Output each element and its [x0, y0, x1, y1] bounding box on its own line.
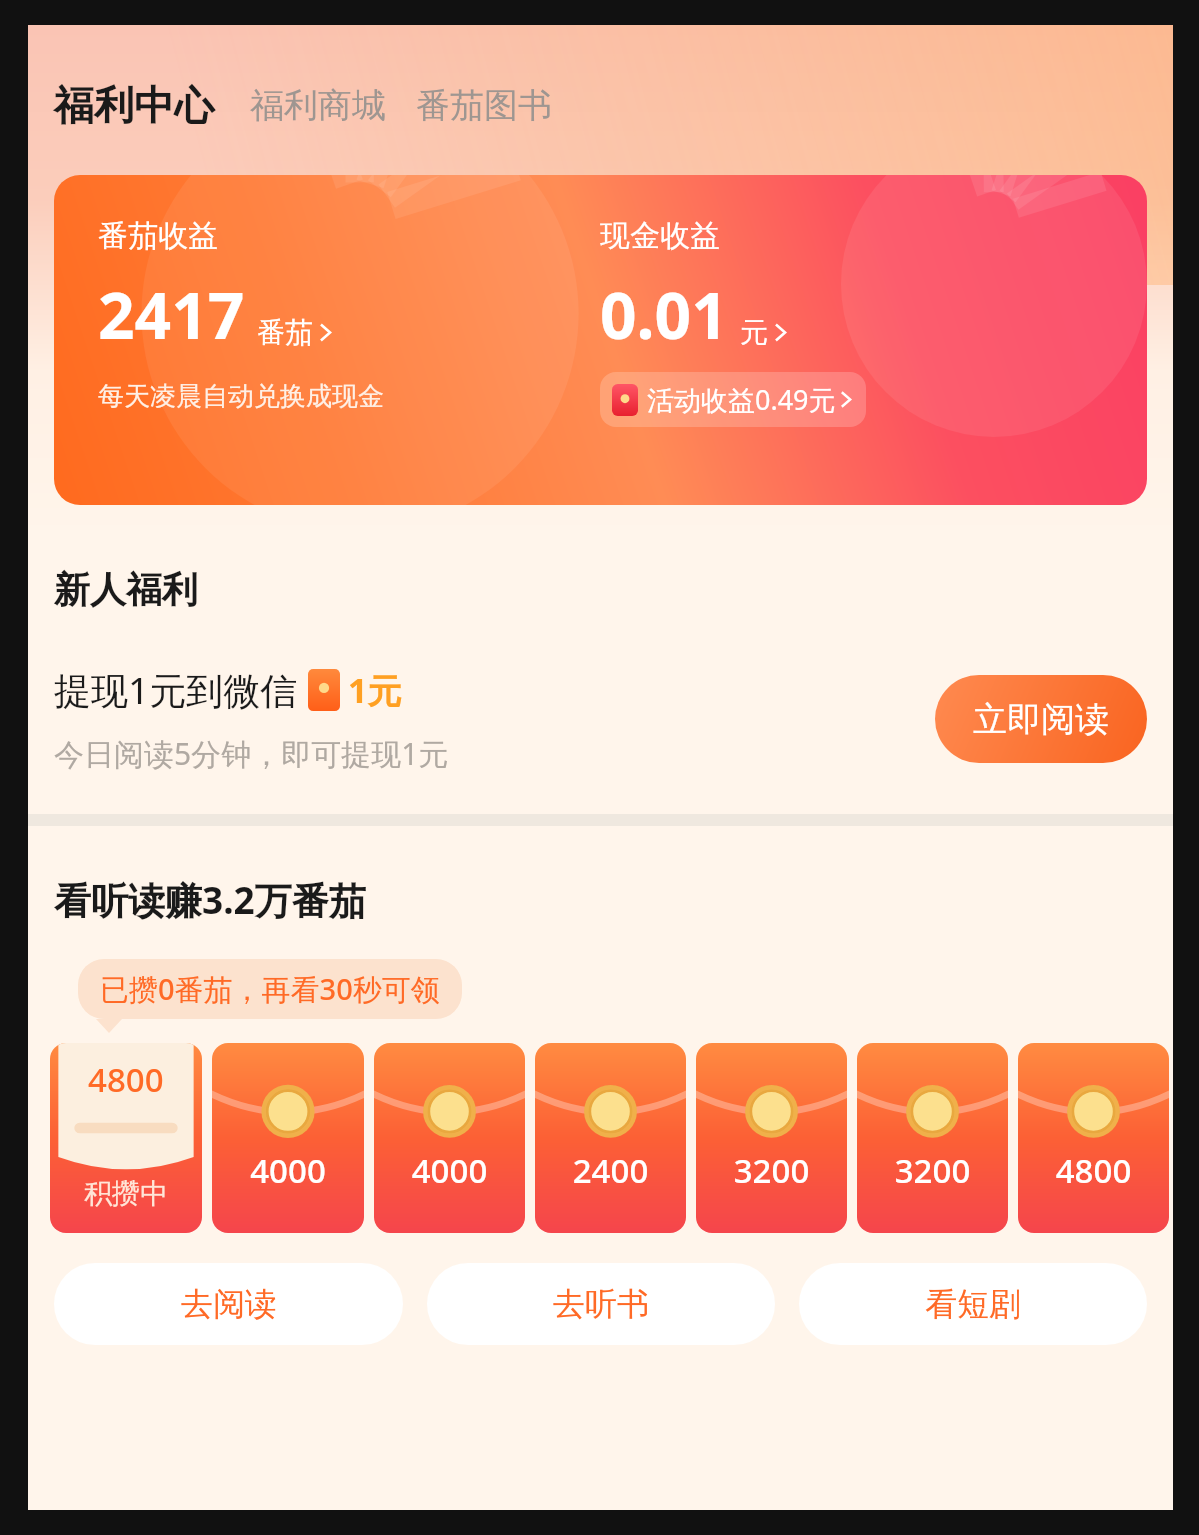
- staticText: 去阅读: [181, 1284, 277, 1324]
- staticText: 番茄收益: [98, 217, 218, 255]
- button[interactable]: 福利商城: [250, 87, 386, 130]
- staticText: 去听书: [553, 1284, 649, 1324]
- button[interactable]: 3200: [696, 1043, 847, 1233]
- button[interactable]: 3200: [857, 1043, 1008, 1233]
- staticText: 提现1元到微信: [54, 664, 298, 715]
- button[interactable]: 活动收益0.49元: [600, 372, 866, 427]
- staticText: 福利中心: [54, 80, 214, 130]
- staticText: 1元: [348, 667, 402, 713]
- staticText: 4800: [1018, 1148, 1169, 1193]
- staticText: 番茄: [257, 315, 313, 350]
- button[interactable]: 番茄收益: [54, 175, 1147, 505]
- button[interactable]: 4800: [50, 1043, 202, 1233]
- staticText: 今日阅读5分钟，即可提现1元: [54, 733, 449, 774]
- staticText: 看短剧: [925, 1284, 1021, 1324]
- staticText: 新人福利: [54, 567, 198, 612]
- staticText: 已攒0番茄，再看30秒可领: [100, 969, 440, 1009]
- button[interactable]: 看短剧: [799, 1263, 1147, 1345]
- staticText: 2417: [98, 271, 245, 358]
- staticText: 活动收益0.49元: [647, 381, 836, 418]
- staticText: 4000: [374, 1148, 525, 1193]
- staticText: 3200: [696, 1148, 847, 1193]
- staticText: 2400: [535, 1148, 686, 1193]
- staticText: 0.01: [600, 271, 728, 358]
- button[interactable]: 福利中心: [54, 80, 214, 130]
- button[interactable]: 去听书: [427, 1263, 775, 1345]
- staticText: 元: [740, 315, 768, 350]
- button[interactable]: 4800: [1018, 1043, 1169, 1233]
- button[interactable]: 4000: [212, 1043, 364, 1233]
- button[interactable]: 番茄图书: [416, 87, 552, 130]
- staticText: 每天凌晨自动兑换成现金: [98, 380, 384, 413]
- staticText: 立即阅读: [973, 698, 1109, 741]
- button[interactable]: 立即阅读: [935, 675, 1147, 763]
- button[interactable]: 去阅读: [54, 1263, 403, 1345]
- button[interactable]: 4000: [374, 1043, 525, 1233]
- button[interactable]: 2400: [535, 1043, 686, 1233]
- staticText: 3200: [857, 1148, 1008, 1193]
- staticText: 现金收益: [600, 217, 720, 255]
- staticText: 积攒中: [84, 1176, 168, 1211]
- staticText: 番茄图书: [416, 84, 552, 127]
- staticText: 4800: [88, 1057, 164, 1102]
- staticText: 4000: [212, 1148, 364, 1193]
- staticText: 福利商城: [250, 84, 386, 127]
- staticText: 看听读赚3.2万番茄: [54, 874, 366, 925]
